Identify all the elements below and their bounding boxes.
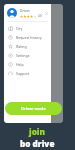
staticText: join <box>29 126 46 137</box>
button[interactable]: Request history <box>4 33 51 42</box>
staticText: bo drive <box>20 138 55 149</box>
staticText: Rating <box>16 44 27 49</box>
button[interactable]: Settings <box>4 51 51 60</box>
staticText: Help <box>16 62 24 67</box>
button[interactable]: Driver mode <box>5 102 62 115</box>
staticText: Settings <box>16 53 30 58</box>
staticText: City <box>16 26 23 31</box>
staticText: Support <box>16 71 30 76</box>
button[interactable]: Rating <box>4 42 51 51</box>
button[interactable]: Support <box>4 69 51 78</box>
staticText: Driver mode <box>21 106 46 111</box>
button[interactable]: Driver <box>4 4 51 21</box>
button[interactable]: City <box>4 24 51 33</box>
button[interactable]: Help <box>4 60 51 69</box>
staticText: Driver <box>20 8 30 13</box>
button[interactable]: Close menu <box>43 10 49 16</box>
staticText: Request history <box>16 35 42 40</box>
staticText: 4.8 <box>38 14 42 18</box>
